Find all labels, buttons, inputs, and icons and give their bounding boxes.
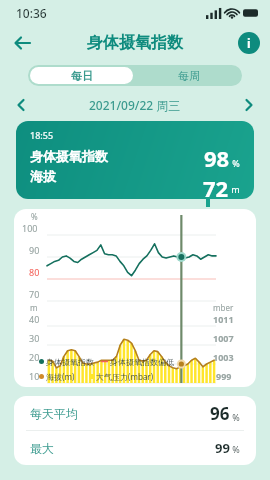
button[interactable]: 每天平均 — [14, 396, 256, 430]
button[interactable]: 每日 — [30, 67, 133, 84]
staticText: m — [229, 183, 240, 195]
staticText: 99 — [215, 439, 230, 457]
staticText: 2021/09/22 周三 — [89, 97, 181, 113]
staticText: 身体摄氧指数偏低 — [108, 356, 175, 367]
staticText: 每日 — [71, 69, 93, 83]
staticText: 1011 — [213, 313, 234, 325]
staticText: 80 — [29, 266, 40, 278]
staticText: % — [230, 443, 240, 455]
staticText: 身体摄氧指数 — [44, 356, 95, 367]
staticText: 30 — [29, 332, 40, 344]
staticText: 72 — [203, 173, 229, 199]
staticText: 10 — [29, 370, 40, 382]
staticText: mber — [213, 302, 234, 313]
staticText: 每天平均 — [30, 406, 78, 421]
staticText: % — [31, 211, 38, 222]
staticText: 100 — [22, 222, 38, 234]
staticText: m — [30, 302, 38, 313]
staticText: 海拔 — [30, 168, 56, 184]
staticText: % — [230, 411, 240, 423]
staticText: 每周 — [178, 69, 200, 83]
staticText: 10:36 — [16, 5, 47, 21]
staticText: 身体摄氧指数 — [30, 148, 108, 164]
button[interactable]: Previous day — [8, 93, 34, 117]
staticText: i — [247, 35, 251, 51]
staticText: 最大 — [30, 441, 54, 456]
staticText: 1007 — [213, 332, 234, 344]
staticText: 1003 — [213, 351, 234, 363]
button[interactable]: Next day — [236, 93, 262, 117]
staticText: 96 — [210, 402, 230, 425]
staticText: % — [230, 157, 240, 169]
button[interactable]: Info — [238, 32, 260, 54]
staticText: 90 — [29, 244, 40, 256]
staticText: 98 — [204, 143, 230, 173]
staticText: 身体摄氧指数 — [87, 33, 183, 53]
staticText: 40 — [29, 313, 40, 325]
button[interactable]: 最大 — [14, 431, 256, 465]
staticText: 20 — [29, 351, 40, 363]
staticText: 70 — [29, 288, 40, 300]
staticText: 海拔(m) — [44, 371, 75, 382]
button[interactable]: 每周 — [135, 65, 242, 86]
button[interactable]: Back — [8, 28, 38, 58]
staticText: 18:55 — [30, 129, 54, 141]
staticText: 大气压力(mbar) — [94, 371, 154, 382]
staticText: 999 — [216, 370, 232, 382]
button[interactable]: 18:55 — [16, 121, 254, 199]
